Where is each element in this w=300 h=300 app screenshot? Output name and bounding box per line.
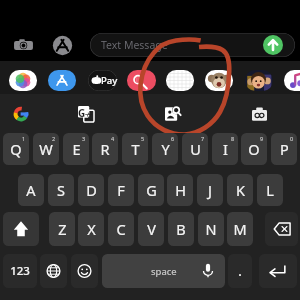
button[interactable]: Translate — [78, 106, 94, 122]
staticText: 5 — [141, 135, 145, 142]
staticText: 9 — [260, 135, 264, 142]
staticText: F — [117, 180, 125, 200]
staticText: K — [236, 180, 245, 200]
button[interactable]: Enter — [259, 254, 297, 288]
button[interactable]: Images — [127, 70, 156, 91]
button[interactable]: Camera — [13, 35, 34, 56]
staticText: B — [176, 219, 186, 239]
staticText: V — [147, 219, 156, 239]
staticText: O — [248, 139, 260, 159]
button[interactable]: W — [33, 133, 59, 165]
button[interactable]: C — [108, 212, 134, 246]
button[interactable]: I — [212, 133, 238, 165]
staticText: X — [87, 219, 96, 239]
button[interactable]: R — [92, 133, 118, 165]
button[interactable]: . — [228, 254, 252, 288]
button[interactable]: K — [227, 174, 253, 206]
button[interactable]: Memoji monkey — [205, 70, 233, 91]
button[interactable]: Grid — [166, 70, 194, 91]
button[interactable]: Text Message — [90, 33, 295, 57]
button[interactable]: Send — [263, 35, 283, 55]
button[interactable]: B — [168, 212, 194, 246]
button[interactable]: Photos — [9, 70, 37, 91]
staticText: G — [78, 106, 86, 120]
button[interactable]: Backspace — [265, 212, 298, 246]
button[interactable]: O — [241, 133, 267, 165]
staticText: Text Message — [101, 38, 168, 52]
staticText: 4 — [111, 135, 115, 142]
staticText: W — [39, 139, 53, 159]
staticText: 0 — [290, 135, 294, 142]
staticText: . — [238, 262, 242, 280]
staticText: L — [266, 180, 274, 200]
staticText: 8 — [231, 135, 235, 142]
button[interactable]: P — [271, 133, 297, 165]
staticText: I — [223, 139, 228, 159]
button[interactable]: Q — [3, 133, 29, 165]
staticText: G — [146, 180, 157, 200]
button[interactable]: 123 — [3, 254, 37, 288]
button[interactable]: D — [78, 174, 104, 206]
staticText: A — [26, 180, 36, 200]
staticText: 文 — [85, 112, 93, 121]
button[interactable]: N — [198, 212, 224, 246]
button[interactable]: Emoji — [71, 254, 98, 288]
staticText: 123 — [10, 263, 30, 279]
button[interactable]: GIF camera — [252, 107, 267, 121]
staticText: D — [86, 180, 97, 200]
staticText: Q — [10, 139, 22, 159]
staticText: C — [116, 219, 126, 239]
button[interactable]: V — [138, 212, 164, 246]
button[interactable]: App Store — [48, 70, 76, 91]
staticText: N — [205, 219, 217, 239]
button[interactable]: T — [122, 133, 148, 165]
staticText: Z — [58, 219, 67, 239]
button[interactable]: S — [48, 174, 74, 206]
button[interactable]: Shift — [3, 212, 39, 246]
button[interactable]: Pay — [88, 70, 117, 91]
button[interactable]: Y — [152, 133, 178, 165]
button[interactable]: Language — [40, 254, 67, 288]
staticText: Pay — [101, 74, 118, 87]
staticText: R — [100, 139, 110, 159]
staticText: J — [208, 180, 212, 200]
staticText: 7 — [201, 135, 205, 142]
button[interactable]: Music — [284, 70, 300, 91]
button[interactable]: G — [138, 174, 164, 206]
staticText: E — [72, 139, 81, 159]
staticText: P — [280, 139, 289, 159]
staticText: H — [175, 180, 186, 200]
staticText: Y — [161, 139, 170, 159]
button[interactable]: Apple Pay — [88, 70, 117, 91]
button[interactable]: Image search — [165, 106, 181, 122]
button[interactable]: X — [78, 212, 104, 246]
staticText: U — [190, 139, 201, 159]
button[interactable]: Memoji — [245, 70, 273, 91]
button[interactable]: Google — [13, 106, 29, 122]
button[interactable]: J — [197, 174, 223, 206]
staticText: 2 — [52, 135, 56, 142]
button[interactable]: U — [182, 133, 208, 165]
button[interactable]: L — [257, 174, 283, 206]
button[interactable]: E — [63, 133, 89, 165]
staticText: S — [57, 180, 65, 200]
button[interactable]: Z — [49, 212, 75, 246]
staticText: 6 — [171, 135, 175, 142]
staticText: space — [151, 265, 177, 278]
button[interactable]: F — [108, 174, 134, 206]
staticText: M — [233, 219, 247, 239]
button[interactable]: App Store — [51, 34, 74, 57]
button[interactable]: space — [102, 254, 225, 288]
button[interactable]: A — [18, 174, 44, 206]
button[interactable]: M — [227, 212, 253, 246]
staticText: 3 — [82, 135, 86, 142]
staticText: T — [131, 139, 140, 159]
staticText: 1 — [22, 135, 26, 142]
button[interactable]: H — [167, 174, 193, 206]
